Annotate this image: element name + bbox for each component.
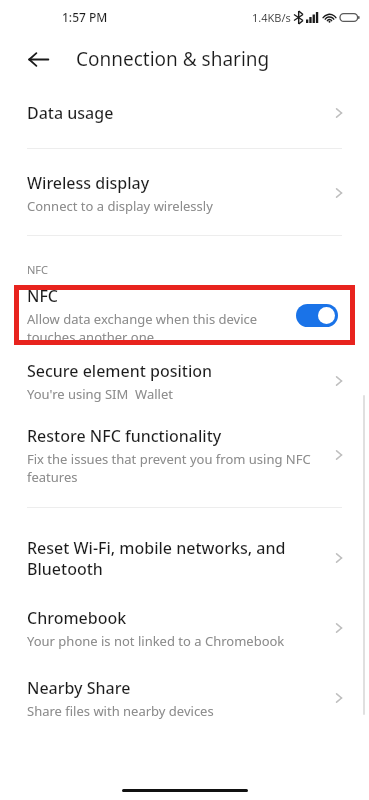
- staticText: Restore NFC functionality: [27, 425, 222, 447]
- staticText: Secure element position: [27, 360, 213, 382]
- button[interactable]: Secure element position: [0, 355, 369, 407]
- button[interactable]: NFC: [14, 285, 355, 345]
- staticText: Allow data exchange when this device tou…: [27, 310, 277, 345]
- staticText: Nearby Share: [27, 677, 131, 699]
- button[interactable]: Restore NFC functionality: [0, 421, 369, 489]
- button[interactable]: Wireless display: [0, 165, 369, 221]
- staticText: Data usage: [27, 102, 114, 124]
- button[interactable]: Data usage: [0, 90, 369, 136]
- staticText: 1.4KB/s: [252, 10, 291, 25]
- staticText: Reset Wi-Fi, mobile networks, and Blueto…: [27, 537, 317, 580]
- staticText: Chromebook: [27, 607, 127, 629]
- staticText: NFC: [27, 285, 59, 307]
- button[interactable]: Reset Wi-Fi, mobile networks, and Blueto…: [0, 532, 369, 584]
- button[interactable]: Back: [16, 37, 60, 81]
- staticText: Connect to a display wirelessly: [27, 197, 213, 215]
- button[interactable]: Nearby Share: [0, 672, 369, 724]
- button[interactable]: Chromebook: [0, 602, 369, 654]
- button[interactable]: NFC toggle: [296, 304, 338, 327]
- staticText: Your phone is not linked to a Chromebook: [27, 632, 285, 650]
- staticText: Wireless display: [27, 172, 150, 194]
- staticText: Connection & sharing: [76, 46, 270, 72]
- staticText: Fix the issues that prevent you from usi…: [27, 450, 317, 486]
- staticText: 1:57 PM: [62, 9, 108, 25]
- staticText: Share files with nearby devices: [27, 702, 214, 720]
- staticText: You're using SIM Wallet: [27, 385, 173, 403]
- staticText: NFC: [27, 262, 49, 277]
